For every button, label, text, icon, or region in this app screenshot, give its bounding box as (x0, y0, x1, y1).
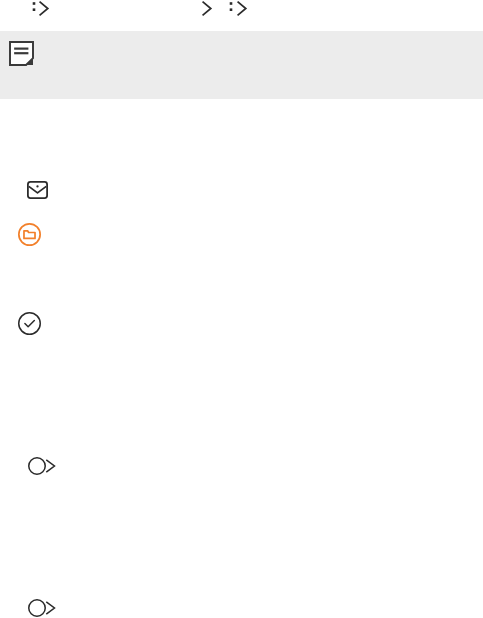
button[interactable]: More options (225, 0, 237, 22)
button[interactable]: Done (18, 312, 41, 335)
button[interactable]: Note (10, 42, 33, 65)
button[interactable]: Select (28, 599, 60, 617)
button[interactable]: More options (28, 0, 40, 22)
button[interactable]: Select (28, 457, 60, 475)
button[interactable]: Folder (18, 223, 41, 246)
button[interactable] (0, 31, 483, 99)
button[interactable]: Inbox (27, 181, 48, 199)
